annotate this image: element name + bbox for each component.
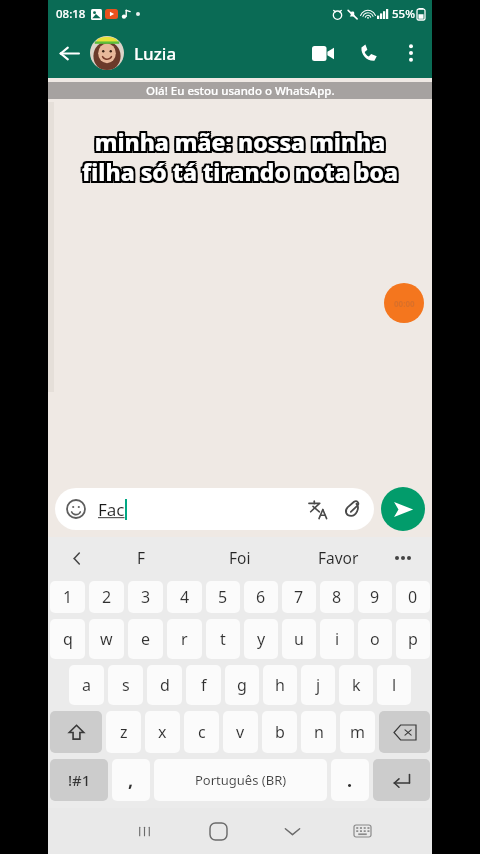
button[interactable]: g	[225, 665, 259, 705]
staticText: ,	[128, 768, 134, 793]
button[interactable]: Back	[48, 32, 90, 74]
staticText: x	[158, 721, 167, 743]
button[interactable]: n	[301, 711, 336, 753]
button[interactable]: r	[167, 619, 202, 659]
staticText: 9	[370, 586, 380, 608]
button[interactable]: p	[396, 619, 430, 659]
button[interactable]: h	[263, 665, 297, 705]
staticText: .	[347, 768, 353, 793]
button[interactable]: Symbols	[50, 759, 108, 801]
staticText: b	[275, 721, 285, 743]
staticText: 8	[332, 586, 342, 608]
button[interactable]: y	[244, 619, 278, 659]
button[interactable]: b	[262, 711, 297, 753]
button[interactable]: i	[320, 619, 354, 659]
button[interactable]: More suggestions	[388, 543, 418, 573]
button[interactable]: j	[301, 665, 335, 705]
staticText: Luzia	[134, 42, 177, 65]
staticText: z	[120, 721, 128, 743]
button[interactable]: x	[145, 711, 180, 753]
button[interactable]: Emoji	[65, 498, 87, 520]
staticText: y	[257, 628, 266, 650]
button[interactable]: 2	[89, 581, 124, 613]
staticText: 0	[408, 586, 418, 608]
button[interactable]: Video call	[300, 30, 346, 76]
button[interactable]: Luzia	[90, 28, 300, 78]
button[interactable]: o	[358, 619, 392, 659]
staticText: q	[63, 628, 73, 650]
button[interactable]: s	[108, 665, 143, 705]
button[interactable]: Attach	[340, 497, 364, 521]
button[interactable]: Previous suggestions	[62, 543, 92, 573]
button[interactable]: .	[331, 759, 369, 801]
button[interactable]: f	[186, 665, 221, 705]
button[interactable]: d	[147, 665, 182, 705]
button[interactable]: Send	[381, 487, 425, 531]
button[interactable]: c	[184, 711, 219, 753]
button[interactable]: w	[89, 619, 124, 659]
button[interactable]: t	[206, 619, 240, 659]
button[interactable]: Video timer	[384, 283, 424, 323]
staticText: t	[220, 628, 226, 650]
button[interactable]: 1	[50, 581, 85, 613]
staticText: 6	[256, 586, 266, 608]
button[interactable]: Enter	[373, 759, 430, 801]
button[interactable]: Foi	[190, 537, 289, 578]
button[interactable]: Backspace	[379, 711, 430, 753]
staticText: minha mãe: nossa minha filha só tá tiran…	[70, 128, 410, 189]
button[interactable]: More options	[392, 34, 430, 72]
button[interactable]: Shift	[50, 711, 102, 753]
staticText: k	[352, 674, 361, 696]
button[interactable]: Hide keyboard	[255, 808, 329, 854]
staticText: minha mãe: nossa minha filha só tá tiran…	[70, 126, 410, 187]
button[interactable]: Recents	[107, 808, 181, 854]
button[interactable]: ,	[112, 759, 150, 801]
button[interactable]: Keyboard settings	[329, 808, 395, 854]
button[interactable]: 4	[167, 581, 202, 613]
button[interactable]: 0	[396, 581, 430, 613]
staticText: F	[137, 547, 146, 568]
button[interactable]: 8	[320, 581, 354, 613]
button[interactable]: u	[282, 619, 316, 659]
staticText: f	[201, 674, 207, 696]
button[interactable]: 5	[206, 581, 240, 613]
staticText: minha mãe: nossa minha filha só tá tiran…	[68, 126, 408, 187]
button[interactable]: Translate	[305, 497, 329, 521]
button[interactable]: 7	[282, 581, 316, 613]
button[interactable]: Home	[181, 808, 255, 854]
staticText: n	[314, 721, 324, 743]
button[interactable]: Português (BR)	[154, 759, 327, 801]
button[interactable]: Emoji	[55, 488, 374, 530]
button[interactable]: a	[69, 665, 104, 705]
button[interactable]: e	[128, 619, 163, 659]
button[interactable]: 3	[128, 581, 163, 613]
staticText: r	[181, 628, 188, 650]
staticText: Português (BR)	[195, 771, 287, 789]
staticText: 55%	[392, 6, 415, 22]
button[interactable]: z	[106, 711, 141, 753]
staticText: Foi	[229, 547, 251, 568]
staticText: h	[275, 674, 285, 696]
staticText: 7	[294, 586, 304, 608]
staticText: j	[316, 674, 321, 696]
button[interactable]: k	[339, 665, 373, 705]
staticText: a	[82, 674, 91, 696]
button[interactable]: v	[223, 711, 258, 753]
button[interactable]: Favor	[289, 537, 388, 578]
staticText: u	[294, 628, 304, 650]
button[interactable]: Voice call	[346, 30, 392, 76]
button[interactable]: F	[92, 537, 190, 578]
staticText: minha mãe: nossa minha filha só tá tiran…	[72, 128, 412, 189]
staticText: minha mãe: nossa minha filha só tá tiran…	[70, 124, 410, 185]
staticText: 1	[63, 586, 73, 608]
staticText: o	[370, 628, 380, 650]
button[interactable]: m	[340, 711, 375, 753]
button[interactable]: l	[377, 665, 411, 705]
staticText: 5	[218, 586, 228, 608]
staticText: e	[141, 628, 151, 650]
staticText: 2	[102, 586, 112, 608]
button[interactable]: 9	[358, 581, 392, 613]
button[interactable]: 6	[244, 581, 278, 613]
button[interactable]: q	[50, 619, 85, 659]
staticText: s	[122, 674, 130, 696]
